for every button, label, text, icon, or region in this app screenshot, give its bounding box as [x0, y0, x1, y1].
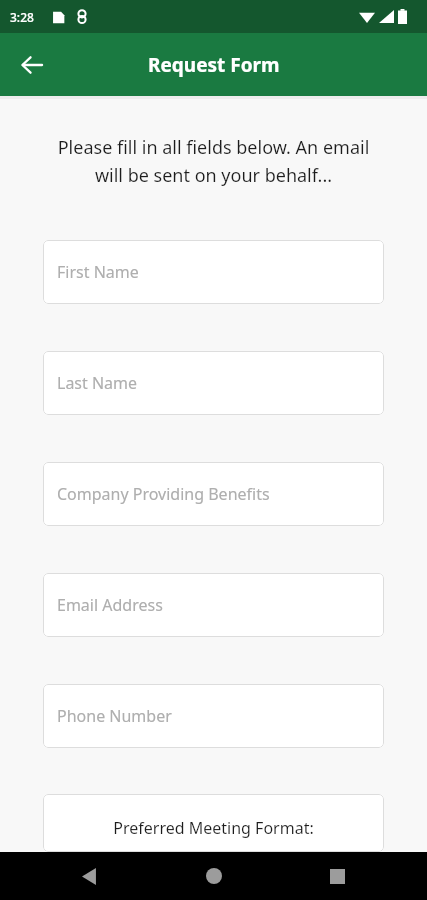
staticText: Email Address — [57, 594, 163, 616]
staticText: Preferred Meeting Format: — [113, 817, 314, 839]
button[interactable]: Recent apps — [315, 854, 359, 898]
button[interactable]: Home — [192, 854, 236, 898]
button[interactable]: Preferred Meeting Format: — [43, 794, 384, 852]
staticText: Phone Number — [57, 705, 172, 727]
button[interactable]: Phone Number — [43, 684, 384, 748]
button[interactable]: Back — [10, 43, 54, 87]
staticText: 3:28 — [10, 9, 34, 25]
staticText: Please fill in all fields below. An emai… — [43, 135, 384, 187]
button[interactable]: Company Providing Benefits — [43, 462, 384, 526]
staticText: First Name — [57, 261, 139, 283]
staticText: Request Form — [148, 52, 280, 78]
button[interactable]: Back — [68, 854, 112, 898]
button[interactable]: First Name — [43, 240, 384, 304]
button[interactable]: Email Address — [43, 573, 384, 637]
staticText: Company Providing Benefits — [57, 483, 270, 505]
button[interactable]: Last Name — [43, 351, 384, 415]
staticText: Last Name — [57, 372, 138, 394]
